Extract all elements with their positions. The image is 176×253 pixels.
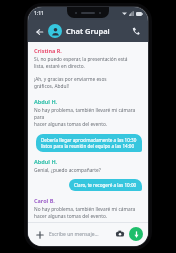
- staticText: Si, no puedo esperar, la presentación es…: [34, 56, 128, 63]
- button[interactable]: Escribe un mensaje...: [49, 231, 112, 238]
- button[interactable]: ¡Ah, y gracias por enviarme esos: [34, 76, 142, 90]
- button[interactable]: Cristina R.: [34, 47, 142, 70]
- staticText: Cristina R.: [34, 47, 62, 54]
- staticText: No hay problema, también llevaré mi cáma…: [34, 206, 136, 213]
- staticText: Carol B.: [34, 197, 55, 204]
- staticText: listos para la reunión del equipo a las …: [41, 143, 135, 149]
- staticText: gráficos, Abdul!: [34, 83, 69, 90]
- button[interactable]: Abdul H.: [34, 158, 142, 174]
- button[interactable]: Claro, te recogeré a las 10:00: [69, 179, 142, 191]
- button[interactable]: Debería llegar aproximadamente a las 10:…: [36, 134, 142, 152]
- button[interactable]: Abdul H.: [34, 98, 142, 128]
- staticText: Abdul H.: [34, 98, 58, 105]
- button[interactable]: Camera: [114, 228, 126, 240]
- staticText: Abdul H.: [34, 158, 58, 165]
- staticText: Chat Grupal: [66, 26, 110, 36]
- staticText: hacer algunas tomas del evento.: [34, 213, 108, 220]
- staticText: ¡Ah, y gracias por enviarme esos: [34, 76, 107, 83]
- button[interactable]: Carol B.: [34, 197, 142, 220]
- staticText: hacer algunas tomas del evento.: [34, 121, 108, 128]
- staticText: Escribe un mensaje...: [49, 231, 99, 238]
- button[interactable]: Voice message: [129, 227, 143, 241]
- button[interactable]: Call: [129, 24, 143, 38]
- staticText: 1:11: [34, 10, 44, 17]
- button[interactable]: Back: [33, 25, 46, 38]
- button[interactable]: Attach: [33, 228, 46, 241]
- staticText: Claro, te recogeré a las 10:00: [74, 182, 137, 188]
- staticText: Debería llegar aproximadamente a las 10:…: [41, 137, 137, 143]
- staticText: No hay problema, también llevaré mi cáma…: [34, 107, 142, 121]
- staticText: Genial, ¿puedo acompañarte?: [34, 167, 101, 174]
- staticText: lista, estaré en directo.: [34, 63, 85, 70]
